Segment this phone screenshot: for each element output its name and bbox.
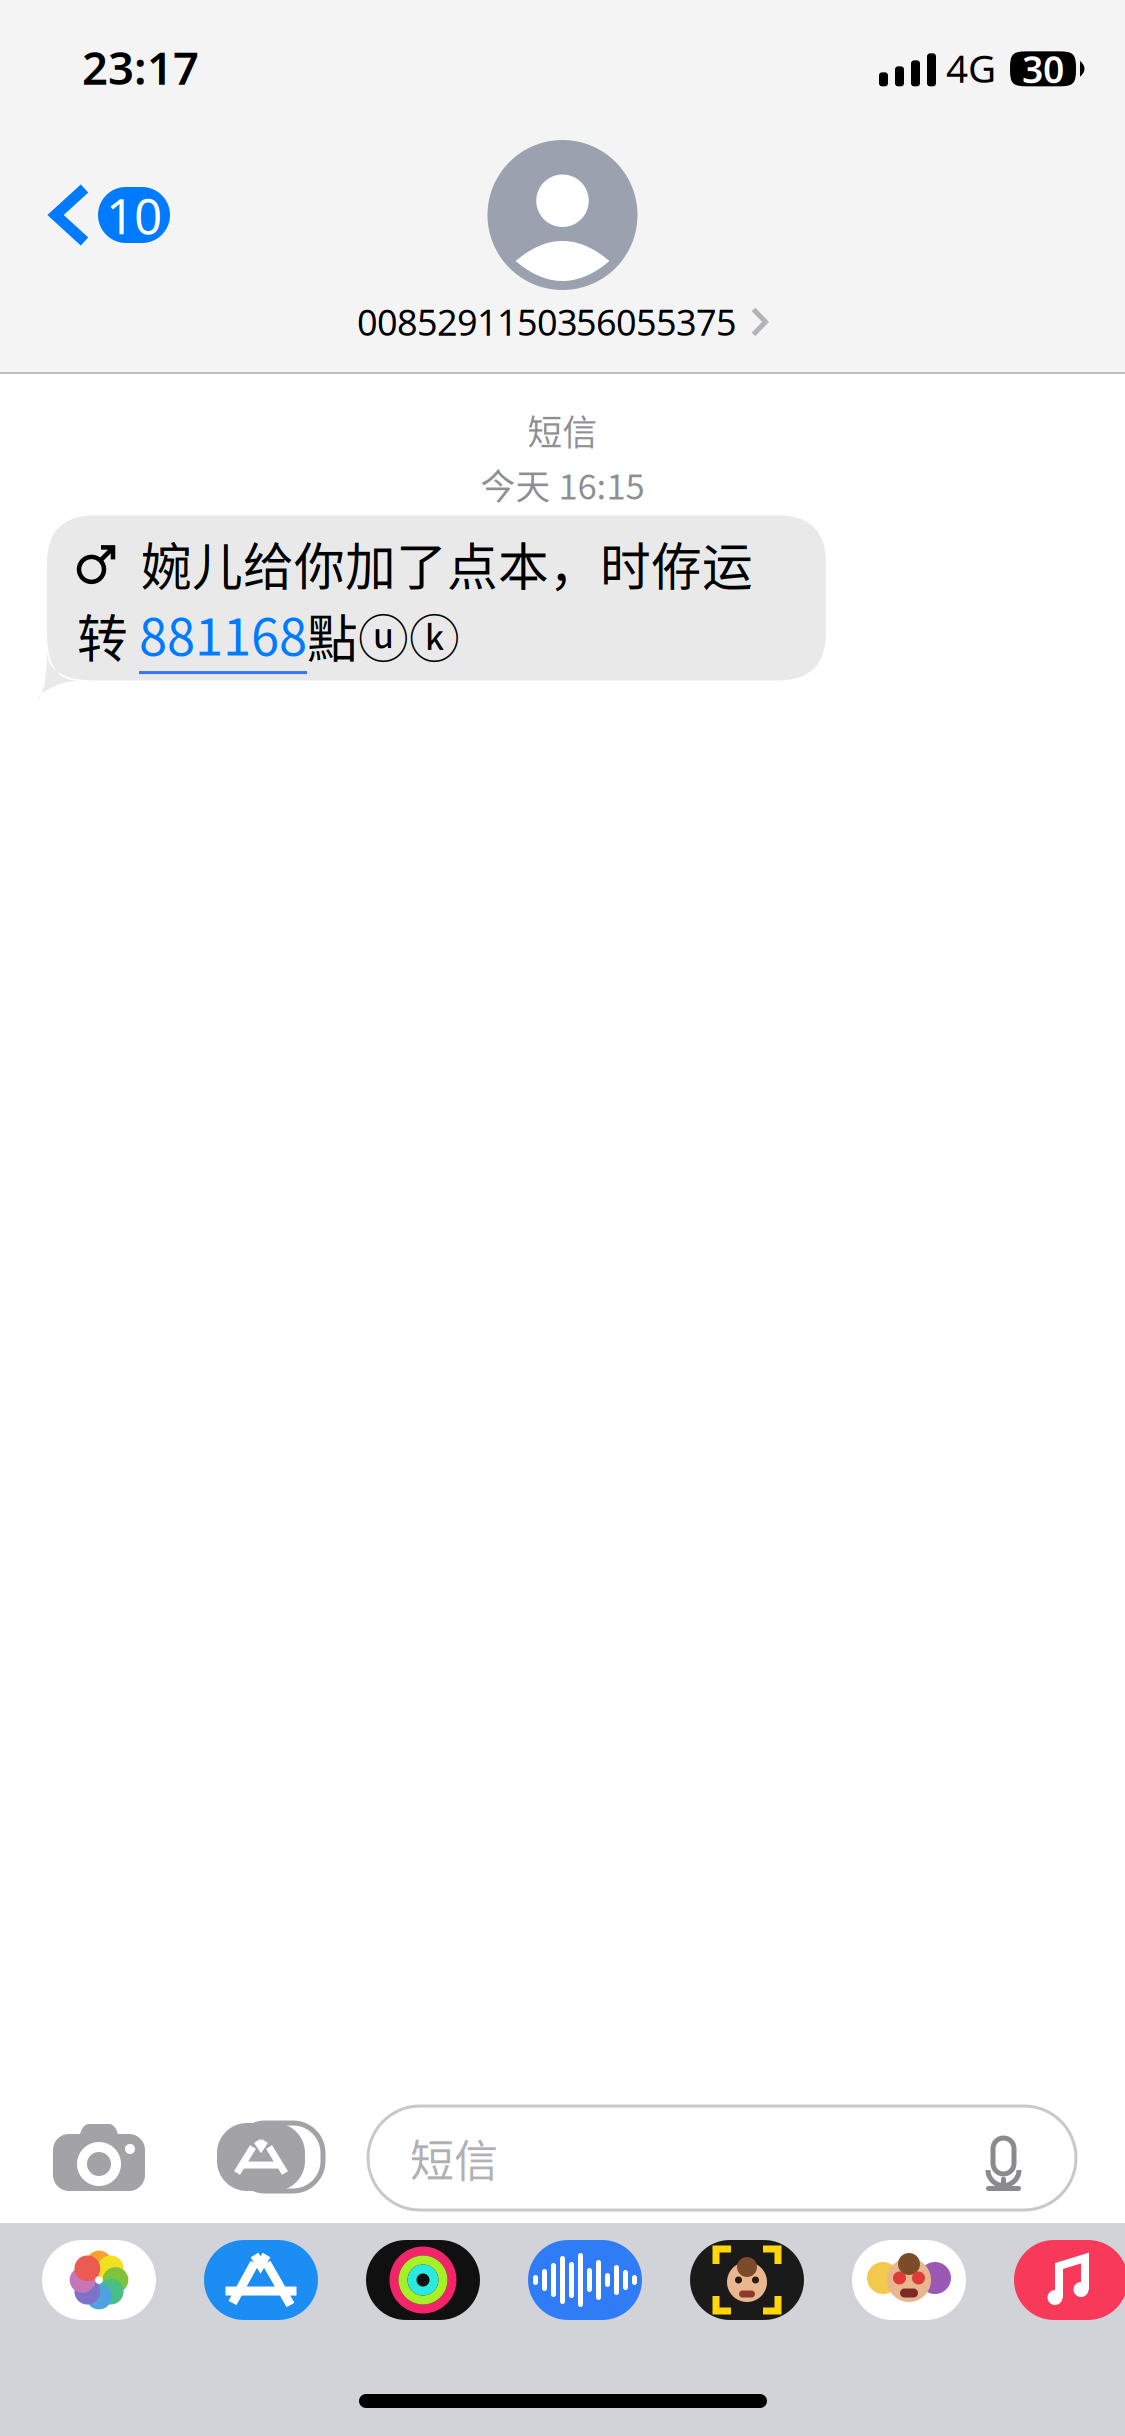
button[interactable]: Memoji stickers (852, 2240, 966, 2320)
staticText: 點ⓤⓚ (307, 599, 460, 672)
staticText: 婉儿给你加了点本，时侟运 (141, 527, 753, 600)
button[interactable]: Fitness (366, 2240, 480, 2320)
staticText: 881168 (139, 597, 307, 670)
button[interactable]: 10 (36, 163, 184, 267)
button[interactable]: Music (1014, 2240, 1125, 2320)
staticText: 今天 16:15 (480, 459, 644, 509)
staticText: 00852911503​56055375 (357, 298, 737, 346)
button[interactable]: Photos (42, 2240, 156, 2320)
button[interactable]: Message (368, 2106, 1076, 2210)
button[interactable]: 00852911503​56055375 (357, 140, 768, 346)
staticText: 30 (1022, 44, 1064, 94)
staticText: 短信 (410, 2126, 498, 2190)
staticText: 10 (106, 182, 162, 248)
staticText: 23:17 (82, 37, 199, 97)
staticText: 转 (77, 599, 139, 672)
button[interactable]: Camera (53, 2122, 145, 2191)
staticText: 4G (946, 42, 996, 93)
button[interactable]: App Store (208, 2123, 314, 2191)
button[interactable]: Memoji (690, 2240, 804, 2320)
button[interactable]: Audio message (528, 2240, 642, 2320)
button[interactable]: App Store (204, 2240, 318, 2320)
staticText: 短信 (527, 405, 597, 455)
